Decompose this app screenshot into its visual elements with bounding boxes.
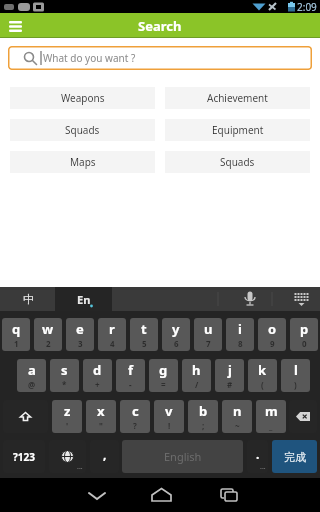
button[interactable]: Squads [165, 151, 310, 173]
button[interactable]: u [194, 318, 222, 351]
button[interactable]: d [83, 359, 112, 392]
button[interactable]: What do you want ? [8, 46, 312, 70]
staticText: z [64, 402, 71, 420]
button[interactable]: Achievement [165, 87, 310, 109]
button[interactable]: v [154, 400, 184, 433]
staticText: e [76, 320, 84, 338]
button[interactable]: , [90, 440, 119, 473]
staticText: ?123 [13, 450, 35, 464]
staticText: Squads [65, 123, 100, 137]
staticText: En [77, 292, 91, 307]
staticText: 1 [14, 338, 19, 349]
staticText: j [228, 361, 232, 379]
staticText: r [109, 320, 115, 338]
staticText: Achievement [207, 91, 268, 105]
staticText: q [12, 320, 21, 338]
staticText: ) [294, 379, 297, 390]
staticText: . [256, 446, 260, 462]
button[interactable] [289, 400, 317, 433]
button[interactable]: s [50, 359, 79, 392]
button[interactable]: Equipment [165, 119, 310, 141]
staticText: 8 [238, 338, 243, 349]
staticText: / [195, 379, 199, 390]
button[interactable]: j [215, 359, 244, 392]
button[interactable]: p [290, 318, 318, 351]
button[interactable]: g [149, 359, 178, 392]
button[interactable]: t [130, 318, 158, 351]
staticText: m [265, 402, 278, 420]
staticText: w [42, 320, 54, 338]
staticText: 5 [142, 338, 147, 349]
button[interactable]: . [247, 440, 268, 473]
staticText: Equipment [212, 123, 264, 137]
button[interactable] [276, 287, 320, 311]
button[interactable]: n [222, 400, 252, 433]
button[interactable]: z [52, 400, 82, 433]
button[interactable]: r [98, 318, 126, 351]
button[interactable]: ?123 [3, 440, 45, 473]
button[interactable]: b [188, 400, 218, 433]
button[interactable]: w [34, 318, 62, 351]
staticText: = [161, 379, 166, 390]
staticText: Squads [220, 155, 255, 169]
staticText: t [141, 320, 147, 338]
button[interactable]: a [17, 359, 46, 392]
staticText: 完成 [284, 450, 306, 464]
button[interactable]: k [248, 359, 277, 392]
staticText: ... [77, 462, 83, 472]
button[interactable] [210, 478, 250, 512]
staticText: * [62, 379, 67, 390]
staticText: ; [202, 420, 205, 431]
staticText: Search [138, 17, 182, 35]
staticText: , [103, 446, 107, 462]
button[interactable] [77, 478, 117, 512]
button[interactable] [3, 15, 27, 37]
button[interactable]: m [256, 400, 286, 433]
staticText: d [93, 361, 102, 379]
button[interactable]: 中 [8, 287, 48, 311]
button[interactable]: f [116, 359, 145, 392]
button[interactable]: Squads [10, 119, 155, 141]
button[interactable]: l [281, 359, 310, 392]
staticText: ( [261, 379, 264, 390]
staticText: u [204, 320, 213, 338]
staticText: # [227, 379, 233, 390]
staticText: Maps [70, 155, 96, 169]
staticText: i [238, 320, 242, 338]
staticText: g [159, 361, 168, 379]
button[interactable]: q [2, 318, 30, 351]
staticText: v [165, 402, 173, 420]
button[interactable]: ... [49, 440, 86, 473]
staticText: + [95, 379, 100, 390]
button[interactable]: o [258, 318, 286, 351]
staticText: - [129, 379, 132, 390]
staticText: y [172, 320, 180, 338]
staticText: 4 [110, 338, 115, 349]
staticText: 3 [78, 338, 83, 349]
staticText: ' [66, 420, 69, 431]
button[interactable] [3, 400, 48, 433]
button[interactable] [230, 287, 272, 311]
button[interactable]: Maps [10, 151, 155, 173]
staticText: x [97, 402, 105, 420]
button[interactable]: e [66, 318, 94, 351]
staticText: 0 [302, 338, 307, 349]
button[interactable]: English [122, 440, 243, 473]
button[interactable]: i [226, 318, 254, 351]
staticText: s [61, 361, 68, 379]
button[interactable]: x [86, 400, 116, 433]
button[interactable]: Weapons [10, 87, 155, 109]
staticText: l [294, 361, 298, 379]
staticText: k [258, 361, 267, 379]
button[interactable] [142, 478, 182, 512]
button[interactable] [55, 287, 112, 311]
button[interactable]: h [182, 359, 211, 392]
staticText: 2:09 [297, 0, 317, 13]
staticText: o [268, 320, 277, 338]
button[interactable]: y [162, 318, 190, 351]
staticText: c [132, 402, 139, 420]
button[interactable]: 完成 [272, 440, 317, 473]
button[interactable]: c [120, 400, 150, 433]
staticText: ... [260, 462, 266, 472]
staticText: _ [269, 420, 273, 431]
